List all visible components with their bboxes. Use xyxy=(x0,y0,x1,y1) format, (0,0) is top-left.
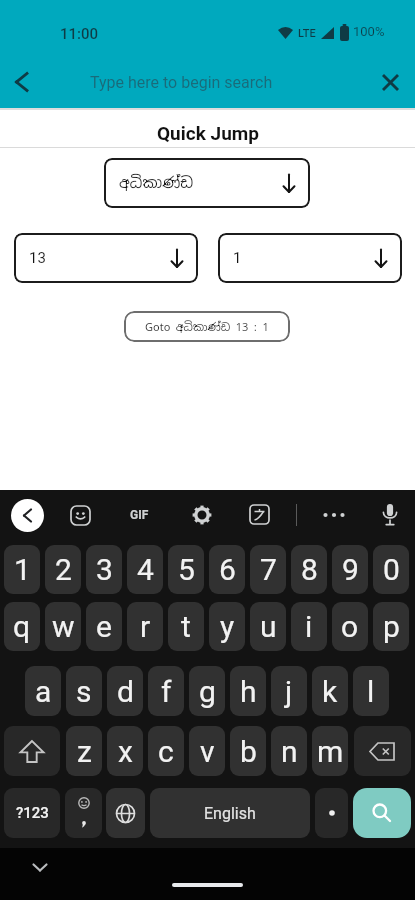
button[interactable]: e xyxy=(86,602,122,651)
staticText: n xyxy=(281,734,298,769)
staticText: e xyxy=(96,609,112,644)
button[interactable]: n xyxy=(271,726,307,776)
button[interactable]: o xyxy=(332,602,368,651)
staticText: t xyxy=(181,609,191,644)
button[interactable]: English xyxy=(150,788,310,838)
staticText: English xyxy=(204,804,256,823)
button[interactable]: l xyxy=(353,666,389,716)
staticText: 5 xyxy=(178,552,195,587)
staticText: q xyxy=(13,609,31,644)
button[interactable] xyxy=(382,504,398,527)
button[interactable] xyxy=(383,75,398,90)
button[interactable]: v xyxy=(189,726,225,776)
staticText: 8 xyxy=(301,552,318,587)
staticText: d xyxy=(117,674,134,709)
button[interactable]: m xyxy=(312,726,348,776)
button[interactable]: b xyxy=(230,726,266,776)
button[interactable] xyxy=(11,499,44,532)
button[interactable]: Goto අධිකාණ්ඩ 13 : 1 xyxy=(124,311,290,342)
staticText: g xyxy=(199,674,216,709)
button[interactable]: ?123 xyxy=(4,788,60,838)
button[interactable]: x xyxy=(107,726,143,776)
button[interactable]: g xyxy=(189,666,225,716)
button[interactable]: c xyxy=(148,726,184,776)
staticText: p xyxy=(383,609,400,644)
button[interactable]: r xyxy=(127,602,163,651)
button[interactable]: 8 xyxy=(291,545,327,594)
button[interactable]: w xyxy=(45,602,81,651)
button[interactable]: 3 xyxy=(86,545,122,594)
staticText: a xyxy=(35,674,52,709)
staticText: 0 xyxy=(383,552,400,587)
button[interactable]: 4 xyxy=(127,545,163,594)
button[interactable]: 2 xyxy=(45,545,81,594)
button[interactable]: 0 xyxy=(373,545,409,594)
button[interactable]: 1 xyxy=(4,545,40,594)
button[interactable]: 1 xyxy=(218,233,402,283)
button[interactable]: 6 xyxy=(209,545,245,594)
staticText: i xyxy=(305,609,313,644)
staticText: w xyxy=(52,609,75,644)
button[interactable] xyxy=(32,863,48,872)
staticText: m xyxy=(317,734,344,769)
button[interactable] xyxy=(4,726,60,776)
staticText: 4 xyxy=(137,552,154,587)
button[interactable]: 9 xyxy=(332,545,368,594)
button[interactable] xyxy=(354,726,411,776)
button[interactable] xyxy=(106,788,145,838)
button[interactable]: y xyxy=(209,602,245,651)
button[interactable]: අධිකාණ්ඩ xyxy=(104,158,310,208)
button[interactable] xyxy=(65,788,102,838)
button[interactable] xyxy=(71,506,90,525)
staticText: o xyxy=(341,609,359,644)
button[interactable]: s xyxy=(66,666,102,716)
staticText: 100% xyxy=(353,24,385,39)
button[interactable]: k xyxy=(312,666,348,716)
staticText: j xyxy=(285,674,293,709)
staticText: Goto අධිකාණ්ඩ 13 : 1 xyxy=(145,320,269,334)
staticText: h xyxy=(240,674,257,709)
button[interactable]: i xyxy=(291,602,327,651)
button[interactable]: 13 xyxy=(14,233,198,283)
staticText: 9 xyxy=(342,552,359,587)
staticText: 6 xyxy=(219,552,236,587)
button[interactable] xyxy=(15,72,29,92)
staticText: LTE xyxy=(298,27,316,40)
staticText: r xyxy=(140,609,151,644)
button[interactable] xyxy=(315,788,348,838)
staticText: k xyxy=(322,674,338,709)
button[interactable] xyxy=(323,512,345,518)
staticText: u xyxy=(260,609,277,644)
button[interactable]: f xyxy=(148,666,184,716)
button[interactable] xyxy=(250,505,269,524)
button[interactable]: p xyxy=(373,602,409,651)
staticText: 1 xyxy=(14,552,31,587)
button[interactable]: a xyxy=(25,666,61,716)
staticText: 7 xyxy=(260,552,277,587)
button[interactable]: u xyxy=(250,602,286,651)
button[interactable]: GIF xyxy=(130,508,149,522)
staticText: 2 xyxy=(55,552,72,587)
button[interactable]: z xyxy=(66,726,102,776)
staticText: f xyxy=(161,674,172,709)
button[interactable]: d xyxy=(107,666,143,716)
staticText: l xyxy=(367,674,375,709)
staticText: අධිකාණ්ඩ xyxy=(119,173,194,193)
staticText: 13 xyxy=(29,249,46,267)
staticText: 1 xyxy=(233,249,242,267)
staticText: 3 xyxy=(96,552,113,587)
button[interactable] xyxy=(192,505,212,525)
staticText: v xyxy=(200,734,215,769)
staticText: z xyxy=(77,734,92,769)
button[interactable] xyxy=(353,788,411,838)
staticText: y xyxy=(220,609,235,644)
button[interactable]: 5 xyxy=(168,545,204,594)
button[interactable]: h xyxy=(230,666,266,716)
button[interactable]: t xyxy=(168,602,204,651)
button[interactable]: j xyxy=(271,666,307,716)
staticText: s xyxy=(76,674,92,709)
button[interactable]: q xyxy=(4,602,40,651)
button[interactable]: 7 xyxy=(250,545,286,594)
staticText: Quick Jump xyxy=(157,122,259,144)
staticText: c xyxy=(158,734,174,769)
